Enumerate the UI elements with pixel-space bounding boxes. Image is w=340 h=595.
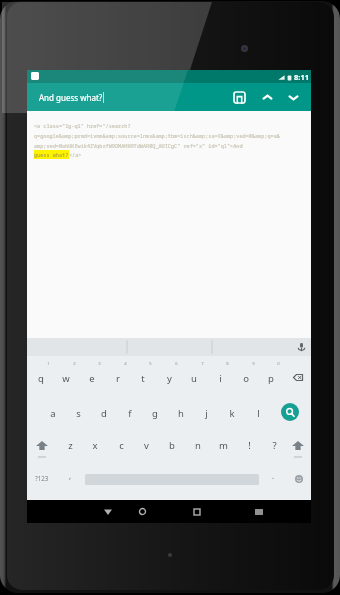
button[interactable]: t [130,361,156,395]
button[interactable]: b [159,428,185,462]
staticText: 8:11 [294,72,309,82]
staticText: e [89,372,95,385]
staticText: v [144,439,149,452]
button[interactable]: s [65,396,91,430]
button[interactable]: Recent apps [186,500,208,523]
button[interactable]: ?123 [27,462,57,496]
button[interactable]: v [133,428,159,462]
staticText: , [69,470,72,481]
button[interactable]: d [91,396,117,430]
staticText: 4 [124,361,127,367]
staticText: ?123 [35,474,49,482]
button[interactable]: Previous result [255,85,279,109]
button[interactable]: Voice input [292,338,311,356]
staticText: n [195,439,201,452]
button[interactable]: Hide keyboard [248,500,270,523]
button[interactable]: Shift [28,429,56,463]
staticText: f [128,407,132,420]
staticText: b [169,439,175,452]
staticText: d [101,407,107,420]
button[interactable]: f [117,396,143,430]
button[interactable]: i [207,361,233,395]
staticText: x [92,439,98,452]
button[interactable]: p [258,361,284,395]
staticText: 8 [226,361,229,367]
staticText: </a> [69,151,82,158]
staticText: 7 [201,361,204,367]
staticText: 9 [252,361,255,367]
staticText: 5 [149,361,152,367]
button[interactable]: Home [131,500,153,523]
staticText: o [243,372,249,385]
staticText: ! [248,439,251,452]
button[interactable]: ? [261,428,287,462]
staticText: r [116,372,120,385]
button[interactable]: r [105,361,131,395]
staticText: j [205,407,208,420]
staticText: g [152,407,158,420]
staticText: And guess what? [39,92,103,103]
staticText: ? [272,439,277,452]
staticText: w [62,372,70,385]
button[interactable]: , [58,462,82,496]
button[interactable]: n [185,428,211,462]
staticText: a [50,407,56,420]
staticText: z [68,439,73,452]
staticText: 6 [175,361,178,367]
staticText: s [76,407,81,420]
staticText: l [257,407,260,420]
staticText: y [167,372,172,385]
button[interactable]: j [193,396,219,430]
staticText: 3 [98,361,101,367]
staticText: 1 [47,361,50,367]
button[interactable]: z [57,428,83,462]
staticText: p [268,372,274,385]
staticText: . [272,470,275,481]
button[interactable]: y [156,361,182,395]
staticText: <a class="lg-ql" href="/search? [34,122,131,129]
staticText: m [219,439,228,452]
button[interactable]: c [108,428,134,462]
button[interactable]: e [79,361,105,395]
staticText: guess what? [34,151,69,158]
staticText: t [141,372,145,385]
button[interactable]: x [82,428,108,462]
button[interactable]: Backspace [284,360,311,395]
staticText: 2 [73,361,76,367]
button[interactable]: k [219,396,245,430]
staticText: u [191,372,197,385]
staticText: c [119,439,124,452]
button[interactable]: Select all [227,85,251,109]
staticText: 0 [277,361,280,367]
button[interactable]: Space [82,462,262,496]
button[interactable]: a [40,396,66,430]
staticText: h [178,407,184,420]
button[interactable]: m [210,428,236,462]
button[interactable]: q [28,361,54,395]
button[interactable]: Next result [281,85,305,109]
button[interactable]: Search [271,395,311,429]
button[interactable]: u [181,361,207,395]
staticText: q [38,372,44,385]
button[interactable]: g [142,396,168,430]
button[interactable]: l [245,396,271,430]
button[interactable]: ! [236,428,262,462]
button[interactable]: Shift [284,429,312,463]
staticText: k [229,407,235,420]
staticText: i [219,372,222,385]
button[interactable]: o [233,361,259,395]
button[interactable]: w [53,361,79,395]
button[interactable]: Back [97,500,119,523]
staticText: q=google&amp;prmd=ivnm&amp;source=lnms&a… [34,132,280,139]
button[interactable]: h [168,396,194,430]
staticText: amp;ved=0ahUKEwik4ZVqbzfW9OMAHKHTdWAR0Q_… [34,142,243,149]
button[interactable]: Emoji [286,462,311,496]
